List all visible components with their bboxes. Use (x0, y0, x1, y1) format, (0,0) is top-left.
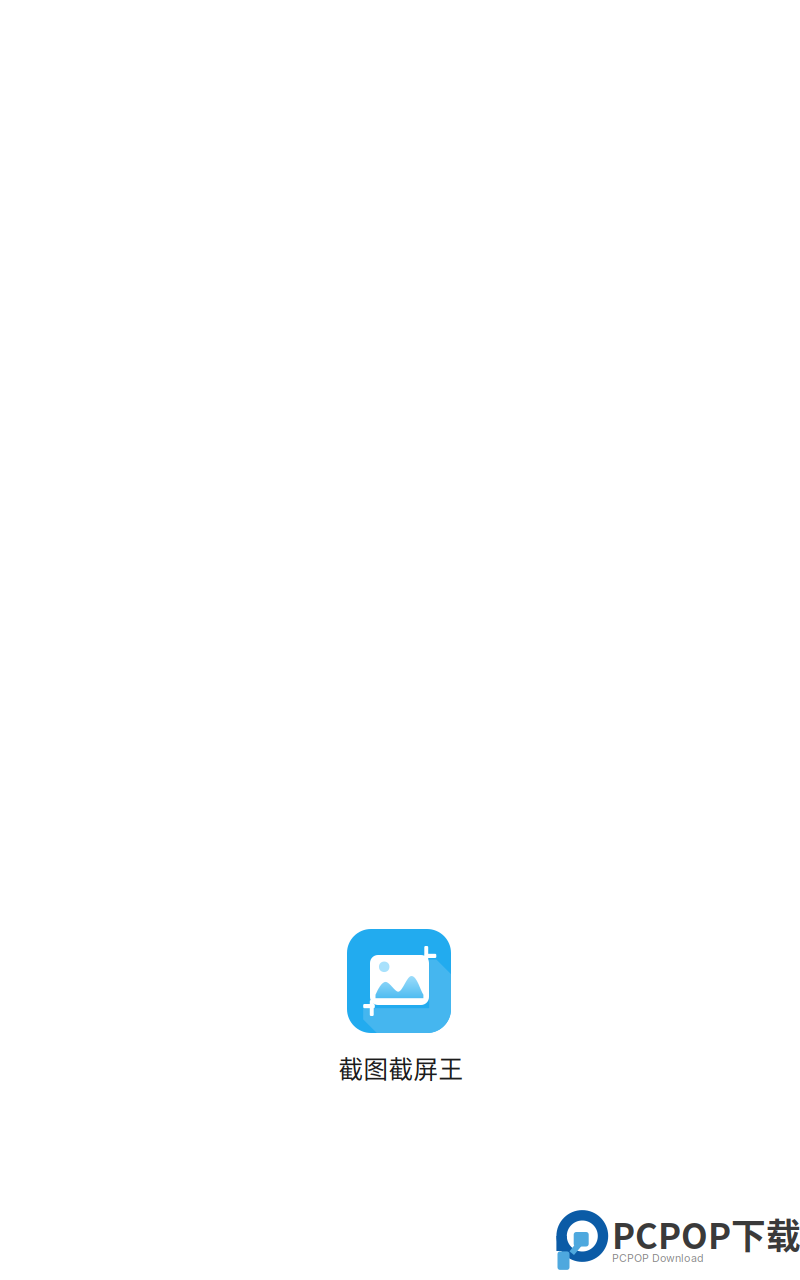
button[interactable]: 截图截屏王 (347, 929, 451, 1033)
staticText: PCPOP Download (612, 1251, 704, 1264)
staticText: PCPOP下载 (612, 1209, 800, 1259)
staticText: 截图截屏王 (338, 1050, 463, 1085)
